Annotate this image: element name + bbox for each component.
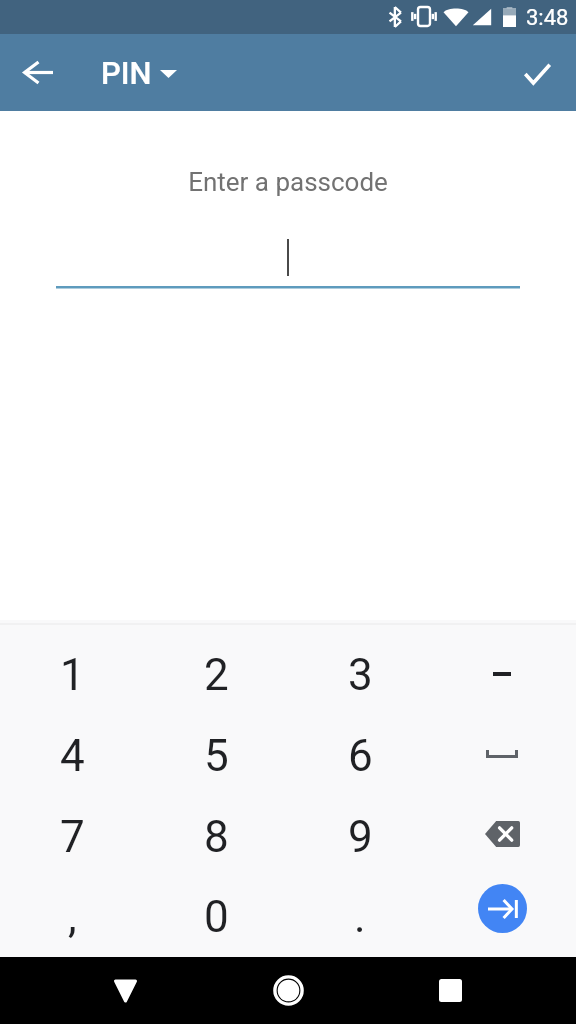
button[interactable]: PIN [101,34,181,111]
staticText: 8 [204,811,229,863]
button[interactable]: Backspace [432,796,576,877]
button[interactable]: 5 [144,715,288,796]
button[interactable]: Recent apps [402,957,498,1024]
button[interactable]: 9 [288,796,432,877]
button[interactable]: 2 [144,634,288,715]
button[interactable]: 7 [0,796,144,877]
staticText: . [354,891,366,943]
button[interactable]: , [0,877,144,957]
button[interactable]: 0 [144,877,288,957]
staticText: 3:48 [526,5,569,31]
button[interactable]: Back [77,957,173,1024]
staticText: 9 [348,811,373,863]
button[interactable]: 6 [288,715,432,796]
staticText: 4 [60,730,85,782]
button[interactable]: Navigate up [6,34,71,111]
button[interactable]: 4 [0,715,144,796]
staticText: 7 [60,811,85,863]
button[interactable]: 1 [0,634,144,715]
button[interactable]: 3 [288,634,432,715]
button[interactable]: Done [504,35,569,112]
button[interactable]: Next [432,877,576,957]
button[interactable]: . [288,877,432,957]
staticText: 6 [348,730,373,782]
staticText: , [68,891,77,943]
staticText: PIN [101,55,152,91]
staticText: 2 [204,649,229,701]
button[interactable]: Passcode field [56,229,520,291]
staticText: 5 [204,730,229,782]
staticText: 3 [348,649,373,701]
button[interactable]: Home [240,957,336,1024]
button[interactable]: Minus [432,634,576,715]
staticText: 0 [204,891,229,943]
staticText: 1 [60,649,85,701]
staticText: Enter a passcode [0,167,576,197]
button[interactable]: 8 [144,796,288,877]
button[interactable]: Space [432,715,576,796]
